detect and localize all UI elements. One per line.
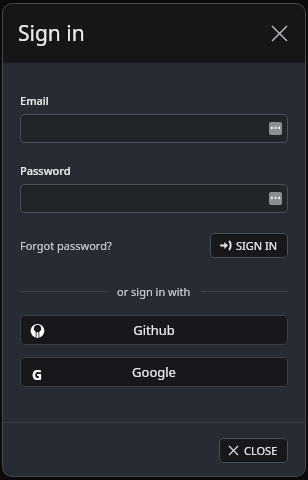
button[interactable]: Google: [20, 357, 288, 387]
button[interactable]: Autofill: [20, 114, 288, 143]
staticText: CLOSE: [244, 443, 278, 458]
staticText: Email: [20, 93, 49, 108]
button[interactable]: CLOSE: [219, 438, 288, 463]
button[interactable]: Forgot password?: [20, 235, 112, 256]
staticText: G: [32, 365, 43, 380]
other: Autofill: [269, 122, 282, 135]
other: Github: [30, 323, 45, 338]
staticText: SIGN IN: [236, 238, 278, 253]
staticText: Github: [133, 321, 175, 339]
button[interactable]: SIGN IN: [210, 233, 288, 258]
staticText: Google: [132, 363, 176, 381]
other: Autofill: [269, 192, 282, 205]
staticText: Password: [20, 163, 71, 178]
staticText: Sign in: [18, 19, 85, 48]
button[interactable]: Github: [20, 315, 288, 345]
staticText: or sign in with: [117, 284, 191, 299]
other: Google: [30, 365, 45, 380]
button[interactable]: Close dialog: [262, 16, 296, 50]
staticText: Forgot password?: [20, 238, 112, 253]
button[interactable]: Autofill: [20, 184, 288, 213]
